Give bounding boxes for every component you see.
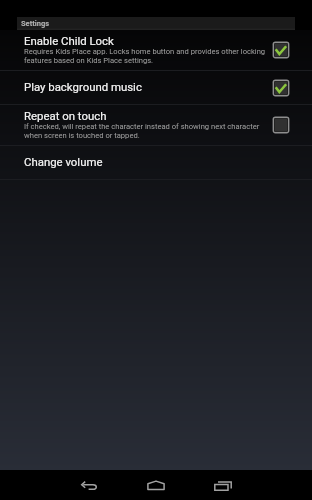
staticText: Change volume [24,155,103,168]
button[interactable]: Play background music [0,71,312,104]
button[interactable]: Checked [272,41,290,59]
button[interactable]: Unchecked [272,116,290,134]
staticText: Enable Child Lock [24,34,114,47]
staticText: Settings [21,19,50,28]
button[interactable]: Repeat on touch [0,105,312,145]
button[interactable]: Enable Child Lock [0,30,312,70]
staticText: Requires Kids Place app. Locks home butt… [24,47,266,64]
button[interactable]: Back [80,470,98,500]
staticText: Repeat on touch [24,109,107,122]
button[interactable]: Home [147,470,165,500]
staticText: If checked, will repeat the character in… [24,122,266,139]
button[interactable]: Checked [272,79,290,97]
button[interactable]: Recent apps [214,470,232,500]
staticText: Play background music [24,80,142,93]
button[interactable]: Change volume [0,146,312,179]
